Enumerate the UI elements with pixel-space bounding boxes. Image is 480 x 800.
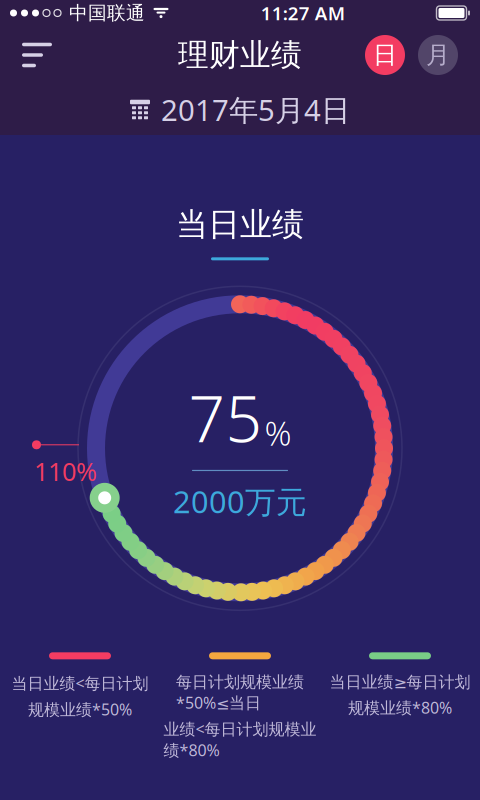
staticText: 理财业绩 — [178, 36, 302, 74]
staticText: 规模业绩*50% — [28, 699, 132, 720]
button[interactable]: 月 — [418, 35, 458, 75]
staticText: 当日业绩≥每日计划 — [329, 672, 470, 692]
staticText: 当日业绩<每日计划 — [11, 672, 148, 693]
staticText: 业绩<每日计划规模业绩*80% — [163, 718, 316, 761]
staticText: 日 — [373, 40, 397, 70]
button[interactable]: Menu — [0, 32, 68, 78]
staticText: 当日业绩 — [176, 205, 304, 244]
button[interactable]: 2017年5月4日 — [0, 84, 480, 135]
staticText: 月 — [426, 40, 450, 70]
staticText: 中国联通 — [69, 1, 145, 24]
staticText: 110% — [34, 454, 97, 488]
staticText: 11:27 AM — [261, 1, 345, 25]
staticText: 规模业绩*80% — [348, 697, 452, 718]
staticText: % — [264, 411, 291, 455]
staticText: 75 — [188, 375, 262, 460]
staticText: 2000万元 — [173, 481, 307, 522]
button[interactable]: 日 — [365, 35, 405, 75]
staticText: 每日计划规模业绩*50%≤当日 — [176, 672, 304, 713]
staticText: 2017年5月4日 — [161, 90, 350, 129]
